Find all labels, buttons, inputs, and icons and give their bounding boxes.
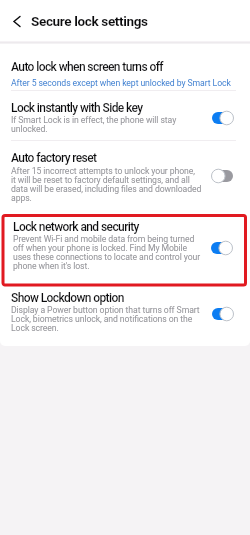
staticText: Show Lockdown option [11,291,124,305]
staticText: it will be reset to factory default sett… [11,175,190,185]
staticText: Auto lock when screen turns off [11,60,163,74]
button[interactable] [212,167,238,185]
staticText: Lock network and security [13,220,139,234]
staticText: After 5 seconds except when kept unlocke… [11,78,231,88]
staticText: After 15 incorrect attempts to unlock yo… [11,166,195,176]
button[interactable] [0,91,250,140]
staticText: Secure lock settings [31,13,148,29]
staticText: Display a Power button option that turns… [11,305,200,315]
button[interactable] [0,46,250,90]
staticText: data will be erased, including files and… [11,184,202,194]
button[interactable] [212,109,238,127]
staticText: off when your phone is locked. Find My M… [13,243,188,253]
button[interactable] [211,239,237,257]
button[interactable] [212,305,238,323]
button[interactable] [0,141,250,210]
staticText: unlocked. [11,124,48,134]
staticText: If Smart Lock is in effect, the phone wi… [11,115,177,125]
staticText: Auto factory reset [11,151,97,165]
staticText: uses these connections to locate and con… [13,252,201,262]
staticText: apps. [11,193,32,203]
staticText: Lock instantly with Side key [11,101,143,115]
button[interactable] [0,211,250,289]
staticText: Prevent Wi-Fi and mobile data from being… [13,234,195,244]
button[interactable] [6,16,28,36]
button[interactable] [0,289,250,345]
staticText: Lock, biometrics unlock, and notificatio… [11,314,193,324]
staticText: Lock screen. [11,323,59,333]
staticText: phone when it's lost. [13,261,90,271]
